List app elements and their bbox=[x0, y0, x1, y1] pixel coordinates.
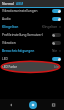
staticText: Profileinstellung (benutzer) bbox=[2, 33, 51, 37]
button[interactable]: Klingelton bbox=[0, 23, 64, 31]
staticText: Nie bbox=[52, 49, 58, 53]
staticText: Benachrichtigungen bbox=[2, 49, 52, 53]
button[interactable]: Switch off bbox=[52, 33, 61, 37]
staticText: LED bbox=[2, 57, 51, 61]
button[interactable]: Back bbox=[0, 99, 22, 110]
button[interactable]: Vibration bbox=[0, 39, 64, 47]
staticText: ABM bbox=[16, 2, 24, 6]
staticText: Klingelton bbox=[2, 25, 42, 29]
button[interactable]: LED Farbe bbox=[0, 63, 64, 71]
button[interactable]: Switch off bbox=[52, 41, 61, 45]
button[interactable]: Switch on bbox=[52, 57, 61, 61]
button[interactable]: Audio bbox=[0, 15, 64, 23]
button[interactable]: Benachrichtigungen bbox=[0, 47, 64, 55]
staticText: Vibration bbox=[2, 41, 51, 45]
staticText: Audio bbox=[2, 17, 51, 21]
staticText: blau bbox=[54, 65, 61, 69]
button[interactable]: LED bbox=[0, 55, 64, 63]
button[interactable]: Recent apps bbox=[43, 99, 64, 110]
staticText: Vibrationseinstellungen bbox=[2, 9, 51, 13]
staticText: Klingelton bbox=[42, 25, 58, 29]
button[interactable]: Home bbox=[22, 99, 43, 110]
staticText: LED Farbe bbox=[2, 65, 54, 69]
button[interactable]: Vibrationseinstellungen bbox=[0, 7, 64, 15]
button[interactable]: Switch on bbox=[52, 17, 61, 21]
staticText: Normal bbox=[2, 2, 14, 6]
button[interactable]: Profileinstellung (benutzer) bbox=[0, 31, 64, 39]
button[interactable]: Switch on bbox=[52, 9, 61, 13]
